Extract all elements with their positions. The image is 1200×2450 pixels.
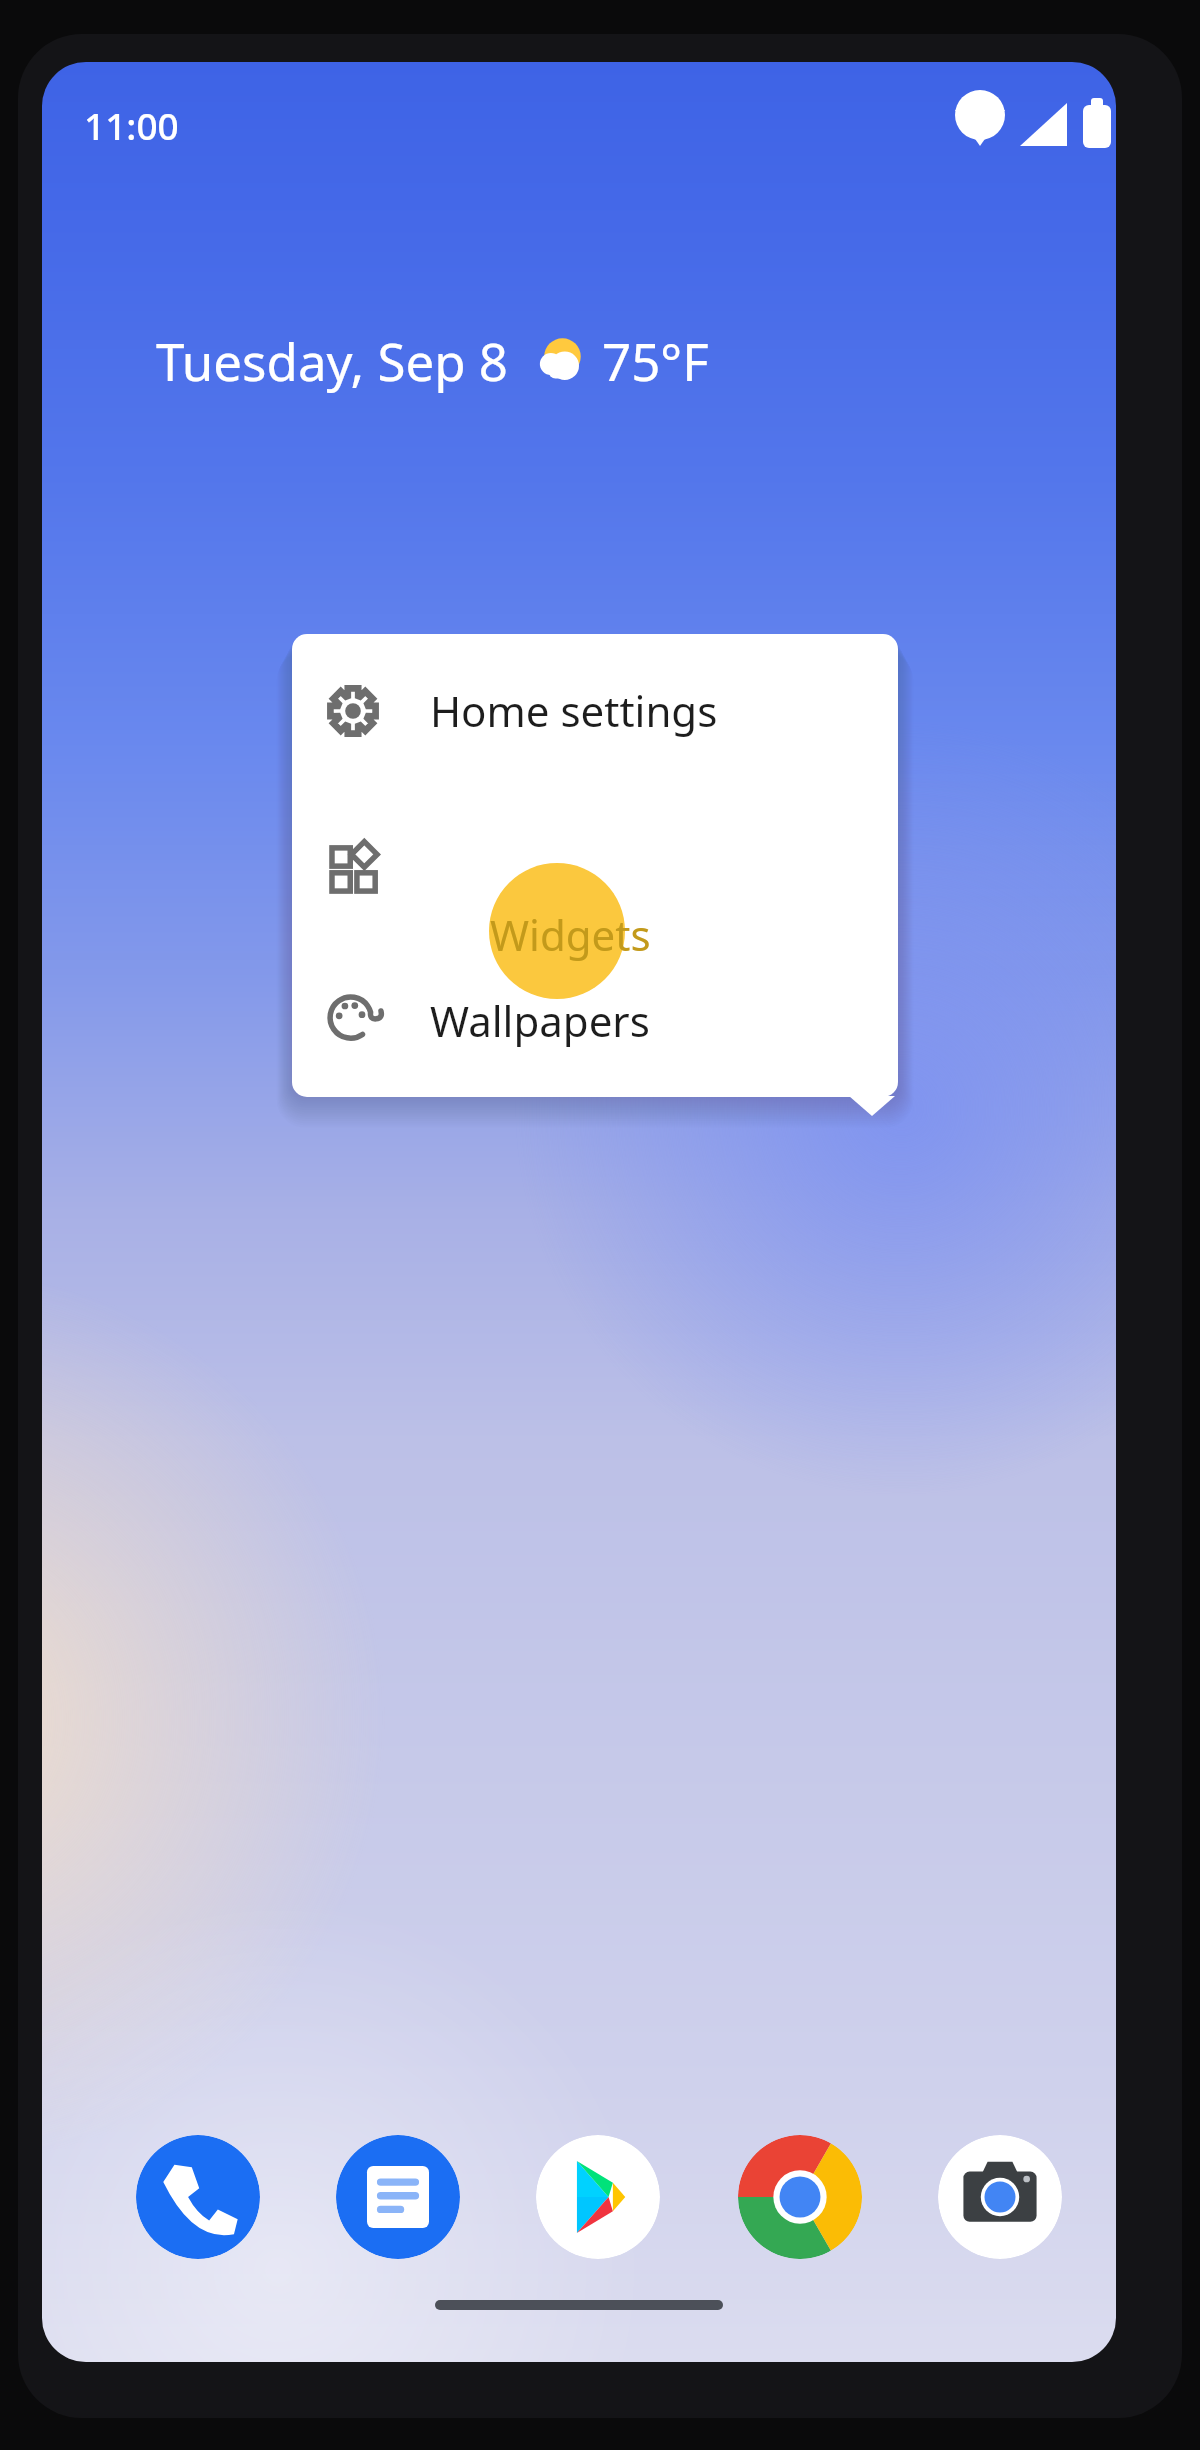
staticText: Wallpapers <box>430 992 650 1049</box>
button[interactable]: Wallpapers <box>292 944 898 1097</box>
button[interactable]: Chrome <box>738 2135 862 2259</box>
staticText: 75°F <box>602 326 709 395</box>
button[interactable]: Play Store <box>536 2135 660 2259</box>
staticText: Widgets <box>490 906 651 963</box>
button[interactable]: Camera <box>938 2135 1062 2259</box>
staticText: Tuesday, Sep 8 <box>156 326 508 395</box>
staticText: 11:00 <box>84 100 179 150</box>
button[interactable]: Messages <box>336 2135 460 2259</box>
button[interactable]: Tuesday, Sep 8 <box>156 317 709 403</box>
button[interactable]: Home settings <box>292 634 898 787</box>
staticText: Home settings <box>430 682 718 739</box>
button[interactable]: Phone <box>136 2135 260 2259</box>
button[interactable] <box>292 789 898 942</box>
